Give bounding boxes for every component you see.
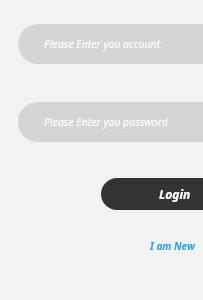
staticText: I am New <box>150 239 195 253</box>
button[interactable]: I am New user, register <box>150 238 203 254</box>
staticText: Please Enter you password <box>44 115 168 129</box>
button[interactable]: Login <box>101 178 203 210</box>
staticText: Please Enter you account <box>44 37 161 51</box>
button[interactable]: Please Enter you password <box>18 102 203 142</box>
staticText: Login <box>159 186 191 202</box>
button[interactable]: Please Enter you account <box>18 24 203 64</box>
